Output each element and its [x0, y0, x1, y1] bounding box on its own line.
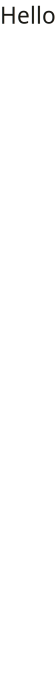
staticText: Hello	[0, 0, 56, 30]
